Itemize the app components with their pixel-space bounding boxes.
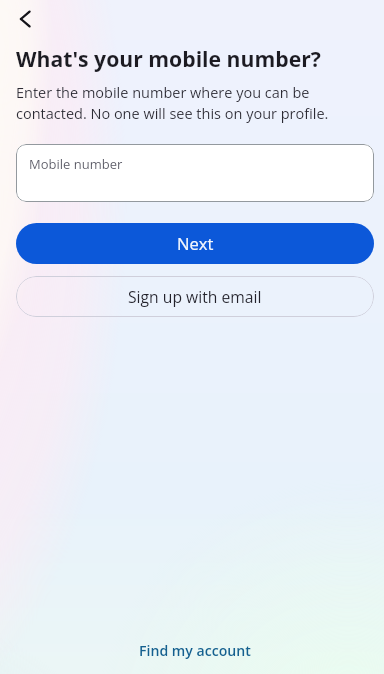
staticText: Next xyxy=(177,232,214,255)
staticText: Find my account xyxy=(139,641,251,660)
button[interactable]: Find my account xyxy=(129,636,261,665)
staticText: What's your mobile number? xyxy=(16,44,321,73)
staticText: Sign up with email xyxy=(128,286,262,307)
staticText: Enter the mobile number where you can be… xyxy=(16,83,348,123)
button[interactable]: Back xyxy=(3,0,47,41)
button[interactable]: Mobile number xyxy=(16,144,374,202)
button[interactable]: Next xyxy=(16,223,374,264)
staticText: Mobile number xyxy=(29,155,123,173)
button[interactable]: Sign up with email xyxy=(16,276,374,317)
